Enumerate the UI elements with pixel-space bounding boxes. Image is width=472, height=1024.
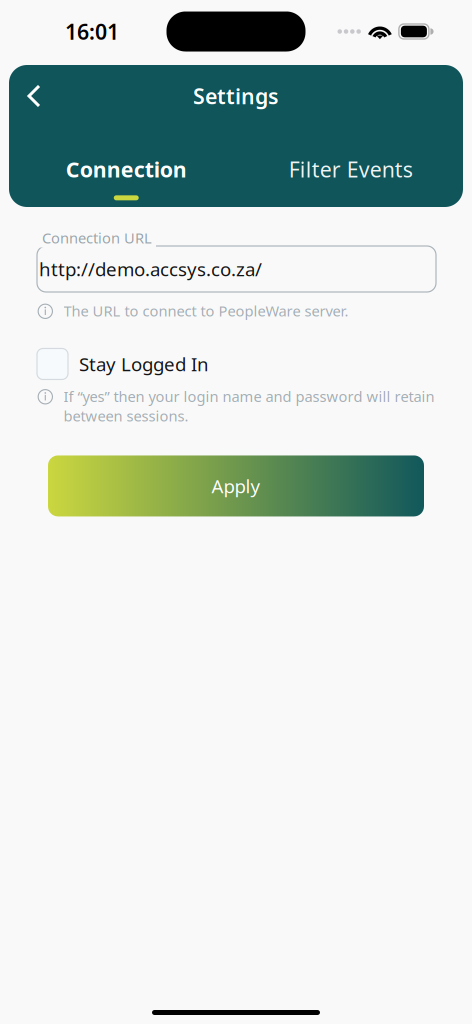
staticText: Filter Events [289, 155, 413, 183]
staticText: 16:01 [65, 17, 119, 46]
staticText: Apply [211, 473, 260, 498]
staticText: Stay Logged In [79, 352, 209, 376]
button[interactable]: Filter Events [238, 151, 463, 204]
staticText: Connection [66, 155, 187, 183]
button[interactable]: Apply [48, 455, 424, 516]
button[interactable]: Back [12, 74, 56, 118]
staticText: Connection URL [42, 228, 152, 247]
staticText: The URL to connect to PeopleWare server. [64, 301, 349, 320]
button[interactable]: Stay Logged In [37, 348, 436, 379]
staticText: Settings [193, 82, 279, 110]
staticText: If “yes” then your login name and passwo… [64, 386, 435, 425]
staticText: http://demo.accsys.co.za/ [39, 257, 262, 281]
button[interactable]: Connection [14, 151, 238, 204]
